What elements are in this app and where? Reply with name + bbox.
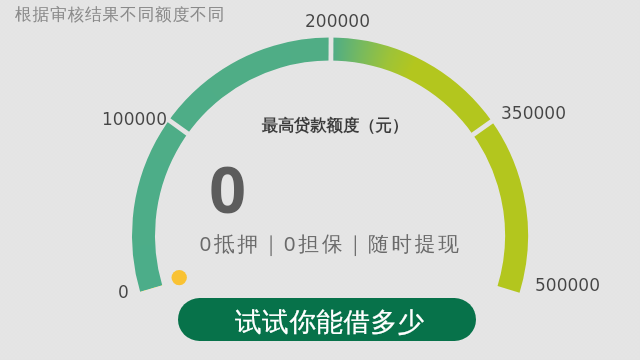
staticText: 0: [118, 282, 129, 302]
staticText: 根据审核结果不同额度不同: [15, 4, 225, 25]
staticText: 0抵押｜0担保｜随时提现: [199, 229, 462, 257]
button[interactable]: 试试你能借多少: [178, 298, 476, 341]
staticText: 200000: [305, 11, 370, 31]
staticText: 最高贷款额度（元）: [261, 115, 408, 136]
staticText: 试试你能借多少: [235, 305, 425, 338]
staticText: 500000: [535, 275, 600, 295]
staticText: 0: [209, 144, 247, 233]
staticText: 100000: [102, 109, 167, 129]
staticText: 350000: [501, 103, 566, 123]
